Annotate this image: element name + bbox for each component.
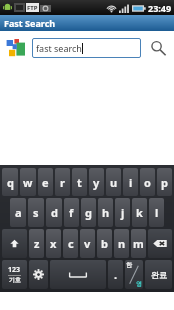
- staticText: t: [77, 175, 82, 190]
- staticText: q: [7, 175, 14, 190]
- staticText: u: [110, 175, 118, 190]
- staticText: l: [155, 205, 159, 220]
- button[interactable]: w: [20, 168, 36, 196]
- button[interactable]: Shift: [2, 229, 27, 258]
- staticText: v: [84, 236, 91, 251]
- staticText: a: [15, 205, 22, 220]
- button[interactable]: Keyboard settings: [29, 260, 48, 289]
- button[interactable]: Search engine: [6, 38, 26, 58]
- staticText: n: [118, 236, 126, 251]
- button[interactable]: Symbols: [2, 260, 27, 289]
- staticText: Fast Search: [4, 17, 56, 29]
- button[interactable]: h: [98, 198, 113, 227]
- button[interactable]: k: [132, 198, 147, 227]
- staticText: g: [85, 205, 92, 220]
- staticText: c: [68, 236, 74, 251]
- button[interactable]: Backspace: [148, 229, 172, 258]
- staticText: 완료: [151, 270, 167, 280]
- staticText: p: [161, 175, 168, 190]
- button[interactable]: 완료: [145, 260, 172, 289]
- staticText: s: [33, 205, 39, 220]
- staticText: .: [114, 267, 118, 282]
- button[interactable]: i: [123, 168, 138, 196]
- button[interactable]: g: [81, 198, 96, 227]
- button[interactable]: c: [63, 229, 78, 258]
- staticText: FTP: [27, 4, 38, 12]
- button[interactable]: Korean English toggle: [125, 260, 143, 289]
- button[interactable]: y: [89, 168, 104, 196]
- button[interactable]: x: [46, 229, 61, 258]
- button[interactable]: r: [55, 168, 70, 196]
- button[interactable]: v: [80, 229, 95, 258]
- staticText: r: [60, 175, 65, 190]
- button[interactable]: o: [140, 168, 155, 196]
- staticText: 영: [136, 280, 142, 288]
- button[interactable]: .: [108, 260, 123, 289]
- staticText: o: [144, 175, 151, 190]
- staticText: b: [101, 236, 108, 251]
- button[interactable]: j: [115, 198, 130, 227]
- button[interactable]: n: [114, 229, 129, 258]
- staticText: h: [102, 205, 110, 220]
- staticText: w: [23, 175, 33, 190]
- button[interactable]: b: [97, 229, 112, 258]
- button[interactable]: p: [157, 168, 172, 196]
- staticText: fast search: [36, 42, 82, 54]
- button[interactable]: f: [64, 198, 79, 227]
- button[interactable]: fast search: [32, 38, 141, 58]
- button[interactable]: s: [28, 198, 44, 227]
- button[interactable]: Space: [50, 260, 106, 289]
- staticText: 123: [8, 265, 21, 275]
- staticText: k: [136, 205, 143, 220]
- button[interactable]: q: [2, 168, 18, 196]
- button[interactable]: d: [46, 198, 62, 227]
- staticText: m: [133, 236, 144, 251]
- staticText: y: [93, 175, 100, 190]
- staticText: j: [121, 205, 125, 220]
- staticText: 기호: [9, 276, 21, 284]
- staticText: f: [69, 205, 74, 220]
- button[interactable]: e: [38, 168, 53, 196]
- staticText: 23:49: [148, 2, 172, 14]
- button[interactable]: m: [131, 229, 146, 258]
- staticText: z: [34, 236, 40, 251]
- staticText: d: [51, 205, 58, 220]
- button[interactable]: l: [149, 198, 164, 227]
- button[interactable]: t: [72, 168, 87, 196]
- staticText: i: [129, 175, 133, 190]
- button[interactable]: u: [106, 168, 121, 196]
- staticText: 한: [126, 261, 132, 269]
- button[interactable]: a: [10, 198, 26, 227]
- button[interactable]: Search: [148, 38, 168, 58]
- staticText: x: [50, 236, 57, 251]
- button[interactable]: z: [29, 229, 44, 258]
- staticText: e: [42, 175, 49, 190]
